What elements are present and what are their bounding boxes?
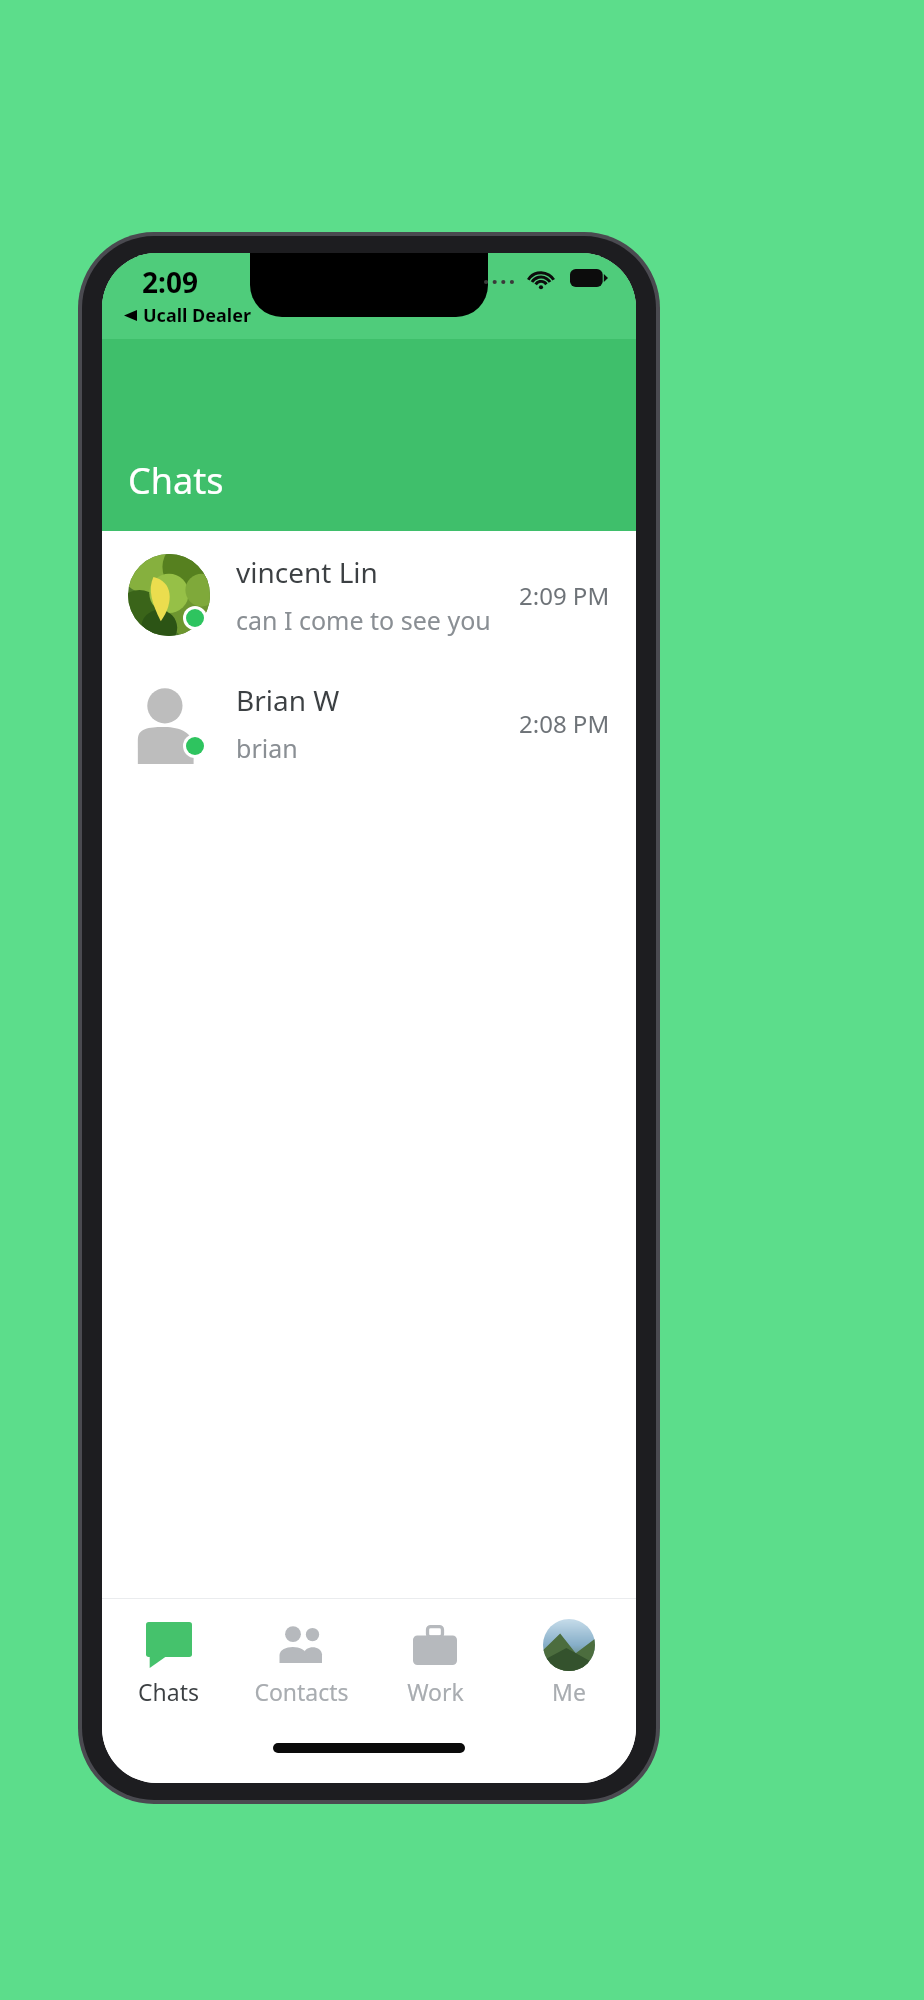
staticText: Chats	[128, 456, 224, 505]
staticText: 2:09	[142, 263, 198, 301]
button[interactable]: Me	[502, 1599, 636, 1725]
button[interactable]: vincent Lin	[102, 531, 636, 659]
staticText: 2:08 PM	[519, 707, 610, 740]
button[interactable]: Brian W	[102, 659, 636, 787]
staticText: Brian W	[236, 681, 340, 719]
staticText: 2:09 PM	[519, 579, 610, 612]
button[interactable]: Work	[368, 1599, 502, 1725]
staticText: Contacts	[254, 1676, 349, 1707]
staticText: brian	[236, 731, 298, 765]
staticText: Work	[407, 1676, 464, 1707]
staticText: can I come to see you	[236, 603, 491, 637]
button[interactable]: Chats	[102, 1599, 235, 1725]
button[interactable]: Contacts	[235, 1599, 368, 1725]
staticText: Chats	[138, 1676, 199, 1707]
staticText: vincent Lin	[236, 553, 378, 591]
staticText: Me	[552, 1676, 586, 1707]
staticText: Ucall Dealer	[143, 303, 251, 328]
